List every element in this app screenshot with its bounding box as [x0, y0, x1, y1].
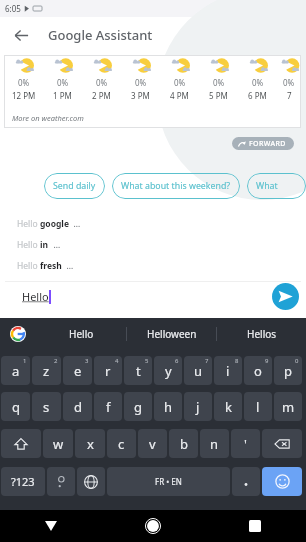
staticText: 7 [287, 90, 292, 101]
button[interactable]: 0% [4, 55, 301, 128]
staticText: 1 PM [53, 90, 72, 101]
staticText: b [180, 435, 188, 453]
button[interactable]: Back [7, 21, 35, 49]
button[interactable]: Hello [5, 234, 301, 255]
button[interactable]: Recents [204, 510, 306, 542]
button[interactable]: d [63, 392, 92, 421]
button[interactable]: Emoji [262, 467, 302, 496]
button[interactable]: l [244, 392, 272, 421]
staticText: o [254, 362, 262, 380]
staticText: y [165, 362, 172, 380]
staticText: in [40, 239, 49, 251]
button[interactable]: n [200, 429, 229, 458]
button[interactable]: Google [0, 318, 36, 350]
button[interactable]: w [43, 429, 73, 458]
staticText: 7 [205, 357, 209, 365]
button[interactable]: What about th [247, 173, 306, 199]
button[interactable]: Shift [1, 429, 41, 458]
button[interactable]: Emoji [47, 467, 75, 496]
staticText: … [69, 218, 81, 230]
button[interactable]: t [124, 356, 152, 385]
button[interactable]: Hello [36, 318, 126, 350]
button[interactable]: Period [232, 467, 260, 496]
staticText: m [282, 398, 295, 416]
staticText: 8 [235, 357, 239, 365]
staticText: 3 PM [131, 90, 150, 101]
staticText: 0% [252, 77, 264, 88]
button[interactable]: z [32, 356, 61, 385]
button[interactable]: y [154, 356, 182, 385]
button[interactable]: Language [77, 467, 105, 496]
staticText: Hello [17, 239, 40, 251]
staticText: d [74, 398, 82, 416]
staticText: 0% [18, 77, 30, 88]
button[interactable]: i [214, 356, 242, 385]
staticText: 2 [54, 357, 58, 365]
staticText: a [12, 362, 20, 380]
staticText: r [105, 362, 111, 380]
button[interactable]: Back [0, 510, 102, 542]
button[interactable]: Hello [5, 213, 301, 234]
button[interactable]: x [75, 429, 105, 458]
staticText: q [12, 398, 20, 416]
staticText: 0% [213, 77, 225, 88]
button[interactable]: o [244, 356, 272, 385]
button[interactable]: q [1, 392, 30, 421]
staticText: 3 [85, 357, 89, 365]
button[interactable]: a [1, 356, 30, 385]
staticText: w [53, 435, 64, 453]
staticText: More on weather.com [12, 113, 84, 123]
staticText: x [87, 435, 94, 453]
button[interactable]: p [274, 356, 302, 385]
staticText: Send daily [53, 180, 96, 192]
button[interactable]: e [63, 356, 92, 385]
button[interactable]: ?123 [1, 467, 45, 496]
staticText: 4 [115, 357, 119, 365]
staticText: Helloween [147, 327, 197, 341]
staticText: t [136, 362, 141, 380]
button[interactable]: Send daily [44, 173, 105, 199]
button[interactable]: Hellos [217, 318, 306, 350]
button[interactable]: k [214, 392, 242, 421]
staticText: FR • EN [155, 476, 182, 487]
button[interactable]: FORWARD [232, 137, 294, 150]
button[interactable]: m [274, 392, 302, 421]
staticText: f [106, 398, 111, 416]
button[interactable]: v [138, 429, 167, 458]
staticText: c [118, 435, 125, 453]
staticText: n [210, 435, 219, 453]
button[interactable]: ' [231, 429, 260, 458]
staticText: google [40, 218, 69, 230]
button[interactable]: s [32, 392, 61, 421]
button[interactable]: Send [272, 283, 299, 310]
button[interactable]: u [184, 356, 212, 385]
staticText: u [194, 362, 203, 380]
staticText: fresh [40, 260, 62, 272]
button[interactable]: Hello [5, 255, 301, 276]
staticText: 1 [23, 357, 27, 365]
staticText: 6 PM [248, 90, 267, 101]
button[interactable]: r [94, 356, 122, 385]
button[interactable]: Helloween [127, 318, 216, 350]
button[interactable]: FR • EN [107, 467, 230, 496]
button[interactable]: What about this weekend? [112, 173, 240, 199]
staticText: 0% [96, 77, 108, 88]
staticText: g [134, 398, 142, 416]
button[interactable]: b [169, 429, 198, 458]
staticText: p [284, 362, 292, 380]
button[interactable]: Backspace [262, 429, 302, 458]
staticText: 5 PM [209, 90, 228, 101]
staticText: 0% [283, 77, 295, 88]
button[interactable]: j [184, 392, 212, 421]
staticText: e [74, 362, 82, 380]
staticText: 6 [175, 357, 179, 365]
button[interactable]: f [94, 392, 122, 421]
button[interactable]: c [107, 429, 136, 458]
staticText: Hello [69, 327, 94, 341]
staticText: Hellos [247, 327, 277, 341]
button[interactable]: Home [102, 510, 204, 542]
button[interactable]: g [124, 392, 152, 421]
staticText: s [43, 398, 50, 416]
button[interactable]: h [154, 392, 182, 421]
